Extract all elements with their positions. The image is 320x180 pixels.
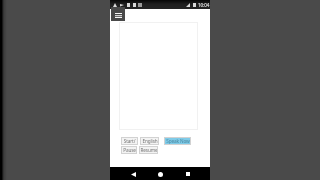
staticText: Resume xyxy=(140,147,158,153)
button[interactable]: Recent apps xyxy=(182,168,194,180)
button[interactable]: Back xyxy=(127,168,139,180)
staticText: Start/Stop xyxy=(121,138,138,144)
button[interactable]: English xyxy=(140,137,159,145)
button[interactable]: Speak Now xyxy=(164,137,191,145)
staticText: Speak Now xyxy=(166,138,190,144)
button[interactable]: Home xyxy=(154,168,166,180)
button[interactable]: Resume xyxy=(139,146,158,154)
button[interactable]: Pause xyxy=(121,146,137,154)
staticText: English xyxy=(142,138,158,144)
button[interactable]: Open navigation menu xyxy=(111,7,125,21)
staticText: Pause xyxy=(123,147,136,153)
staticText: 10:04 xyxy=(198,2,210,8)
button[interactable]: Start/Stop xyxy=(121,137,138,145)
